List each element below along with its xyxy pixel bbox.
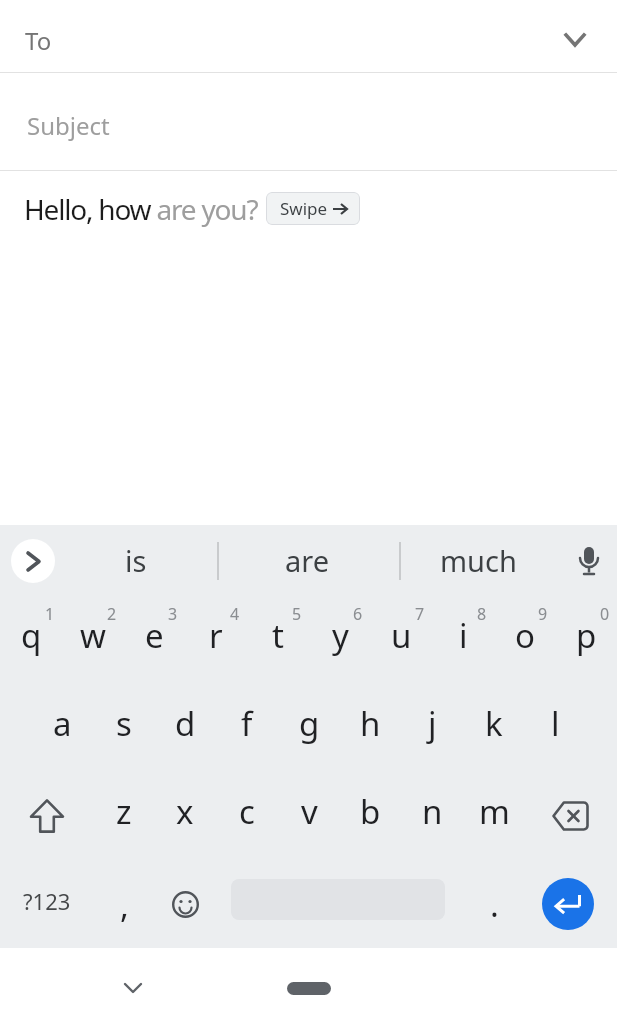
staticText: much (440, 541, 517, 580)
staticText: To (25, 24, 52, 57)
staticText: x (176, 789, 194, 834)
staticText: 8 (477, 603, 487, 625)
button[interactable]: are (232, 525, 382, 596)
staticText: 5 (292, 603, 302, 625)
staticText: j (428, 701, 437, 746)
staticText: w (80, 613, 106, 658)
button[interactable]: u (370, 596, 432, 684)
button[interactable]: y (309, 596, 371, 684)
button[interactable] (567, 531, 611, 591)
button[interactable]: s (93, 684, 155, 772)
button[interactable] (542, 878, 594, 930)
button[interactable] (524, 772, 617, 860)
button[interactable]: To (0, 0, 617, 72)
staticText: g (299, 701, 320, 746)
staticText: r (209, 613, 223, 658)
button[interactable]: o (494, 596, 556, 684)
button[interactable]: much (403, 525, 553, 596)
button[interactable]: t (247, 596, 309, 684)
button[interactable]: g (278, 684, 340, 772)
staticText: b (360, 789, 381, 834)
staticText: 0 (600, 603, 610, 625)
staticText: t (272, 613, 284, 658)
button[interactable]: Swipe (266, 192, 360, 225)
button[interactable]: i (432, 596, 494, 684)
button[interactable]: z (93, 772, 155, 860)
button[interactable]: a (31, 684, 93, 772)
staticText: v (301, 789, 318, 834)
staticText: Hello, how are you? (24, 190, 258, 228)
staticText: y (332, 613, 349, 658)
staticText: q (21, 613, 42, 658)
staticText: m (479, 789, 510, 834)
staticText: 6 (353, 603, 363, 625)
button[interactable] (0, 772, 93, 860)
staticText: p (576, 613, 597, 658)
button[interactable]: l (524, 684, 586, 772)
staticText: 1 (45, 603, 55, 625)
staticText: 3 (168, 603, 178, 625)
button[interactable]: d (154, 684, 216, 772)
staticText: ?123 (23, 886, 71, 916)
staticText: , (120, 883, 129, 928)
button[interactable]: k (463, 684, 525, 772)
button[interactable] (113, 973, 153, 1003)
staticText: z (116, 789, 132, 834)
staticText: o (515, 613, 535, 658)
staticText: 4 (230, 603, 240, 625)
staticText: n (422, 789, 443, 834)
button[interactable]: c (216, 772, 278, 860)
staticText: Swipe (280, 197, 328, 220)
button[interactable]: x (154, 772, 216, 860)
staticText: 2 (107, 603, 117, 625)
button[interactable]: v (278, 772, 340, 860)
button[interactable]: r (185, 596, 247, 684)
staticText: f (241, 701, 253, 746)
button[interactable]: w (62, 596, 124, 684)
button[interactable]: b (339, 772, 401, 860)
button[interactable]: q (0, 596, 62, 684)
staticText: l (551, 701, 560, 746)
staticText: s (116, 701, 132, 746)
button[interactable]: , (93, 860, 155, 948)
button[interactable]: m (463, 772, 525, 860)
button[interactable]: j (401, 684, 463, 772)
button[interactable]: f (216, 684, 278, 772)
staticText: Subject (27, 109, 110, 142)
button[interactable]: ?123 (0, 860, 93, 948)
staticText: are (285, 541, 330, 580)
staticText: h (360, 701, 381, 746)
button[interactable] (11, 539, 55, 583)
staticText: i (459, 613, 468, 658)
staticText: 9 (538, 603, 548, 625)
staticText: d (175, 701, 196, 746)
button[interactable]: e (123, 596, 185, 684)
staticText: c (239, 789, 255, 834)
button[interactable]: Subject (0, 73, 617, 170)
button[interactable] (287, 982, 331, 995)
staticText: k (485, 701, 503, 746)
staticText: . (490, 882, 499, 927)
button[interactable]: . (463, 860, 525, 948)
button[interactable]: p (555, 596, 617, 684)
button[interactable]: h (339, 684, 401, 772)
staticText: 7 (415, 603, 425, 625)
button[interactable]: n (401, 772, 463, 860)
staticText: a (53, 701, 72, 746)
button[interactable] (154, 860, 216, 948)
staticText: is (125, 541, 147, 580)
staticText: u (391, 613, 412, 658)
staticText: e (145, 613, 164, 658)
button[interactable]: is (61, 525, 211, 596)
